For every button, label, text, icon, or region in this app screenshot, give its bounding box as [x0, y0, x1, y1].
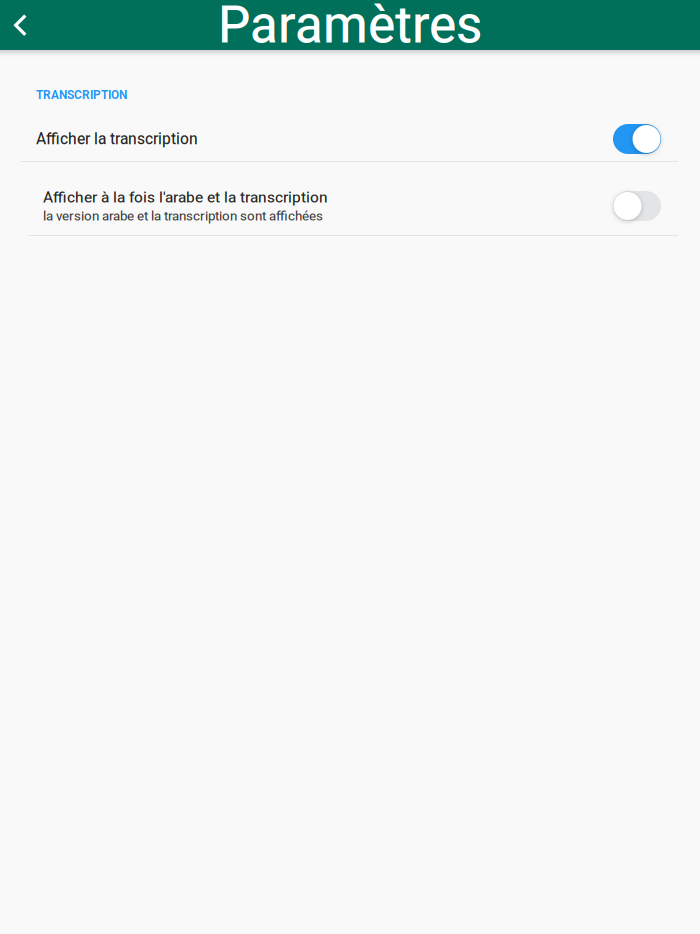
- staticText: Afficher la transcription: [36, 130, 198, 148]
- staticText: Afficher à la fois l'arabe et la transcr…: [43, 188, 328, 206]
- staticText: Paramètres: [218, 0, 482, 55]
- staticText: la version arabe et la transcription son…: [43, 208, 323, 224]
- button[interactable]: Afficher la transcription: [0, 117, 700, 161]
- button[interactable]: Afficher à la fois l'arabe et la transcr…: [0, 162, 700, 235]
- button[interactable]: Back: [0, 0, 42, 50]
- staticText: TRANSCRIPTION: [36, 88, 127, 102]
